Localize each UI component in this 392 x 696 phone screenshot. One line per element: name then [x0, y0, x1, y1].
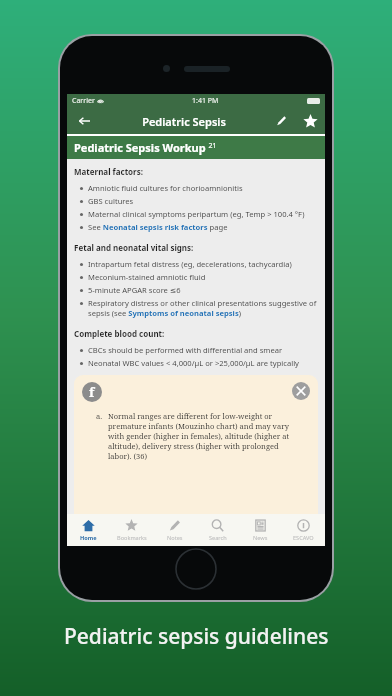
staticText: Meconium-stained amniotic fluid [88, 272, 206, 282]
staticText: CBCs should be performed with differenti… [88, 345, 283, 355]
staticText: Intrapartum fetal distress (eg, decelera… [88, 259, 292, 269]
staticText: 1:41 PM [192, 96, 219, 106]
button[interactable]: Back [67, 108, 101, 134]
staticText: Pediatric Sepsis Workup 21 [74, 140, 217, 155]
button[interactable]: ESCAVO [282, 514, 325, 546]
button[interactable]: Favorite [295, 108, 325, 134]
staticText: Normal ranges are different for low-weig… [108, 411, 304, 461]
staticText: Notes [167, 534, 183, 542]
button[interactable]: Edit [267, 108, 295, 134]
button[interactable]: Footnote [82, 382, 102, 402]
staticText: Maternal clinical symptoms peripartum (e… [88, 209, 305, 219]
staticText: Maternal factors: [74, 166, 143, 177]
staticText: GBS cultures [88, 196, 134, 206]
staticText: Neonatal WBC values < 4,000/µL or >25,00… [88, 358, 299, 368]
staticText: Pediatric sepsis guidelines [64, 622, 329, 651]
button[interactable]: News [239, 514, 282, 546]
staticText: Respiratory distress or other clinical p… [88, 298, 318, 318]
staticText: a. [96, 411, 103, 421]
staticText: News [253, 534, 268, 542]
staticText: Complete blood count: [74, 328, 165, 339]
staticText: Carrier [72, 96, 95, 106]
staticText: Amniotic fluid cultures for chorioamnion… [88, 183, 243, 193]
staticText: f [89, 383, 95, 401]
staticText: See Neonatal sepsis risk factors page [88, 222, 228, 232]
staticText: Fetal and neonatal vital signs: [74, 242, 194, 253]
staticText: Pediatric Sepsis [101, 114, 267, 129]
button[interactable]: Notes [153, 514, 196, 546]
button[interactable]: Pediatric Sepsis Workup 21 [74, 136, 325, 159]
button[interactable]: Search [196, 514, 239, 546]
staticText: 5-minute APGAR score ≤6 [88, 285, 181, 295]
staticText: ESCAVO [293, 534, 314, 542]
staticText: Home [80, 534, 97, 542]
button[interactable]: Bookmarks [110, 514, 153, 546]
staticText: Bookmarks [117, 534, 147, 542]
button[interactable]: Close [292, 382, 310, 400]
button[interactable]: Home [67, 514, 110, 546]
staticText: Search [209, 534, 227, 542]
